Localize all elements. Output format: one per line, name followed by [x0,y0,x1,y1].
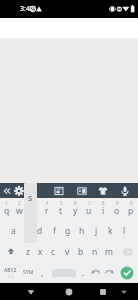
button[interactable]: Translate [76,185,88,197]
button[interactable]: 6 [68,198,82,220]
button[interactable]: g [61,220,75,241]
staticText: 6 [74,200,77,206]
button[interactable]: s [20,220,33,241]
button[interactable]: Back [24,285,38,299]
staticText: x [38,246,43,258]
button[interactable]: l [117,220,131,241]
button[interactable]: n [88,241,102,262]
button[interactable]: Shift [0,241,21,262]
button[interactable]: Backspace [116,241,138,262]
staticText: l [123,225,126,237]
button[interactable]: Home [62,285,76,299]
staticText: j [95,225,98,237]
button[interactable]: Switch keyboard [117,285,131,299]
button[interactable]: h [75,220,89,241]
staticText: h [79,225,85,237]
staticText: q [4,205,10,217]
staticText: c [51,246,56,258]
button[interactable]: x [34,241,47,262]
staticText: SYM [23,269,34,276]
staticText: 9 [116,200,119,206]
staticText: b [78,246,84,258]
button[interactable]: Recent apps [96,285,110,299]
button[interactable]: j [89,220,103,241]
staticText: 0 [130,200,133,206]
button[interactable]: Collapse toolbar [1,185,13,197]
staticText: 3:42 [20,4,34,14]
button[interactable]: m [102,241,116,262]
staticText: a [11,225,16,237]
button[interactable]: 8 [96,198,110,220]
staticText: v [65,246,70,258]
button[interactable]: 2 [13,198,26,220]
staticText: AB12 [4,267,17,274]
staticText: r [45,205,49,217]
staticText: 8 [102,200,105,206]
staticText: u [86,205,92,217]
staticText: 2 [18,200,21,206]
staticText: n [92,246,98,258]
staticText: d [37,225,43,237]
button[interactable]: Enter [116,262,138,283]
button[interactable]: Keyboard settings [13,185,25,197]
staticText: 5 [60,200,63,206]
button[interactable]: Themes [97,185,109,197]
button[interactable]: 4 [40,198,54,220]
staticText: 4 [46,200,49,206]
staticText: , [41,267,44,279]
button[interactable]: a [7,220,20,241]
staticText: k [108,225,113,237]
button[interactable]: b [74,241,88,262]
button[interactable]: Voice input [119,185,131,197]
button[interactable]: k [103,220,117,241]
button[interactable]: 7 [82,198,96,220]
button[interactable]: c [47,241,60,262]
button[interactable]: , [35,262,50,283]
staticText: w [16,205,23,217]
staticText: 1 [5,200,8,206]
staticText: . [82,267,85,279]
button[interactable]: Undo [89,262,102,283]
button[interactable]: Space [50,262,78,283]
staticText: m [105,246,113,258]
button[interactable]: SYM [21,262,35,283]
button[interactable]: 0 [124,198,138,220]
staticText: z [26,246,30,258]
staticText: p [128,205,134,217]
button[interactable]: 9 [110,198,124,220]
staticText: o [114,205,120,217]
staticText: t [59,205,63,217]
staticText: ^ ↓ [8,274,14,279]
button[interactable]: 5 [54,198,68,220]
button[interactable]: Redo [102,262,116,283]
staticText: 7 [88,200,91,206]
staticText: f [53,225,56,237]
button[interactable]: 1 [0,198,13,220]
staticText: y [73,205,78,217]
button[interactable]: v [60,241,74,262]
button[interactable]: AB12 [0,262,21,283]
staticText: s [28,191,33,203]
button[interactable]: 3 [26,198,40,220]
button[interactable]: d [33,220,47,241]
button[interactable]: . [78,262,89,283]
button[interactable]: z [21,241,34,262]
button[interactable]: Keyboard layout [53,185,65,197]
staticText: g [65,225,71,237]
button[interactable]: f [47,220,61,241]
staticText: i [102,205,105,217]
